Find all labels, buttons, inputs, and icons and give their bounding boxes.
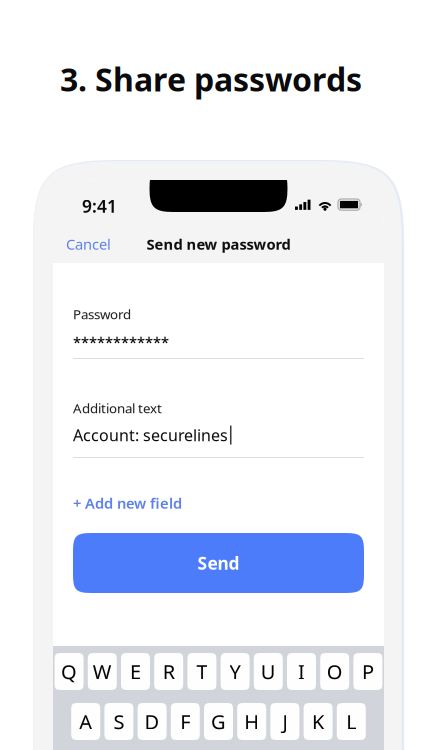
staticText: L [346,708,356,735]
button[interactable]: Y [53,646,384,750]
staticText: G [211,708,226,735]
staticText: A [79,708,92,735]
staticText: U [261,658,276,685]
staticText: E [130,658,141,685]
button[interactable]: Cancel [53,180,384,750]
staticText: H [244,708,259,735]
button[interactable]: K [53,646,384,750]
staticText: F [180,708,190,735]
staticText: Q [61,658,77,685]
staticText: K [312,708,324,735]
staticText: P [362,658,374,685]
button[interactable]: J [53,646,384,750]
staticText: ************ [73,332,169,352]
staticText: Send [197,551,239,574]
staticText: S [113,708,124,735]
staticText: Additional text [73,399,162,417]
staticText: T [196,658,207,685]
staticText: Cancel [66,234,111,254]
button[interactable]: T [53,646,384,750]
button[interactable]: X [53,646,384,750]
button[interactable]: E [53,646,384,750]
button[interactable]: C [53,646,384,750]
staticText: R [163,658,175,685]
button[interactable]: Send [53,180,384,750]
button[interactable]: D [53,646,384,750]
button[interactable]: P [53,646,384,750]
staticText: 9:41 [82,194,117,217]
button[interactable]: M [53,646,384,750]
staticText: W [93,658,112,685]
button[interactable]: Q [53,646,384,750]
button[interactable]: F [53,646,384,750]
button[interactable]: B [53,646,384,750]
button[interactable]: H [53,646,384,750]
staticText: Account: securelines [73,424,228,446]
button[interactable]: S [53,646,384,750]
staticText: D [145,708,160,735]
button[interactable]: L [53,646,384,750]
button[interactable]: G [53,646,384,750]
button[interactable]: V [53,646,384,750]
staticText: O [327,658,343,685]
button[interactable]: + Add new field [53,180,384,750]
staticText: J [282,708,287,735]
button[interactable]: I [53,646,384,750]
staticText: + Add new field [73,493,182,513]
staticText: I [298,658,305,685]
staticText: 3. Share passwords [60,58,362,100]
staticText: Y [230,658,241,685]
button[interactable]: U [53,646,384,750]
staticText: Send new password [146,234,290,254]
button[interactable]: A [53,646,384,750]
button[interactable]: Z [53,646,384,750]
button[interactable]: R [53,646,384,750]
button[interactable]: N [53,646,384,750]
staticText: Password [73,305,131,323]
button[interactable]: O [53,646,384,750]
button[interactable]: W [53,646,384,750]
